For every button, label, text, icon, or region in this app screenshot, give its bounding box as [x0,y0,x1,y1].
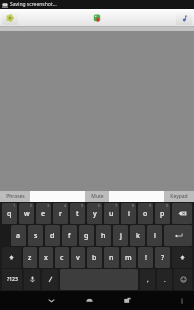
button[interactable]: 6 [87,203,102,224]
button[interactable]: Sticker [2,11,18,25]
button[interactable]: Shift [172,247,192,268]
button[interactable]: Voice input [24,269,40,290]
button[interactable]: App [90,11,104,25]
staticText: , [147,276,149,284]
staticText: 1 [13,203,16,208]
button[interactable]: More options [174,291,190,310]
staticText: 9 [149,203,152,208]
button[interactable]: 2 [19,203,34,224]
button[interactable]: Mute [85,191,109,202]
button[interactable]: Phrases [0,191,30,202]
button[interactable]: Music [176,11,192,25]
button[interactable]: k [130,225,145,246]
staticText: 5 [81,203,84,208]
button[interactable]: Enter [164,225,192,246]
staticText: w [24,209,30,219]
button[interactable]: v [71,247,85,268]
staticText: g [84,231,89,241]
button[interactable]: 1 [2,203,17,224]
button[interactable]: h [96,225,111,246]
button[interactable]: Recent apps [114,291,140,310]
button[interactable]: ?123 [2,269,22,290]
button[interactable]: 9 [138,203,153,224]
button[interactable]: j [113,225,128,246]
staticText: b [92,253,97,263]
staticText: q [7,209,12,219]
button[interactable]: d [45,225,60,246]
staticText: 2 [30,203,33,208]
button[interactable]: s [28,225,43,246]
staticText: h [101,231,106,241]
staticText: v [76,253,80,263]
staticText: d [50,231,55,241]
staticText: x [44,253,48,263]
button[interactable]: Emoji [174,269,192,290]
staticText: Saving screenshot… [10,1,57,8]
button[interactable]: a [11,225,26,246]
button[interactable]: . [157,269,172,290]
staticText: ?123 [7,276,18,283]
staticText: 3 [47,203,50,208]
staticText: Keypad [170,193,188,200]
staticText: y [93,209,97,219]
button[interactable]: ! [138,247,153,268]
staticText: r [59,209,62,219]
button[interactable]: m [121,247,136,268]
staticText: ! [145,253,147,263]
button[interactable]: Shift [2,247,21,268]
staticText: k [136,231,140,241]
button[interactable]: 4 [53,203,68,224]
button[interactable]: 0 [155,203,170,224]
staticText: 7 [115,203,118,208]
staticText: z [28,253,32,263]
button[interactable]: f [62,225,77,246]
button[interactable]: Delete [172,203,192,224]
staticText: c [60,253,64,263]
button[interactable]: Hide keyboard [38,291,64,310]
staticText: a [16,231,21,241]
staticText: . [164,276,166,284]
staticText: 6 [98,203,101,208]
staticText: 8 [132,203,135,208]
staticText: j [120,231,122,241]
staticText: f [68,231,71,241]
button[interactable]: ? [155,247,170,268]
staticText: Mute [91,193,104,200]
staticText: t [76,209,79,219]
button[interactable]: Keypad [164,191,194,202]
staticText: ? [161,253,165,263]
button[interactable]: b [87,247,102,268]
staticText: Phrases [6,193,25,200]
staticText: m [125,253,132,263]
button[interactable]: , [140,269,155,290]
staticText: n [109,253,114,263]
staticText: 0 [166,203,169,208]
button[interactable]: l [147,225,162,246]
button[interactable]: 5 [70,203,85,224]
button[interactable]: Home [76,291,102,310]
button[interactable]: g [79,225,94,246]
button[interactable]: z [23,247,37,268]
button[interactable]: x [39,247,53,268]
button[interactable]: 3 [36,203,51,224]
staticText: o [143,209,148,219]
button[interactable]: 8 [121,203,136,224]
button[interactable]: 7 [104,203,119,224]
staticText: l [154,231,156,241]
staticText: e [41,209,46,219]
staticText: s [34,231,38,241]
staticText: p [160,209,165,219]
staticText: 4 [64,203,67,208]
button[interactable]: n [104,247,119,268]
staticText: u [109,209,114,219]
staticText: i [128,209,130,219]
button[interactable]: Handwriting [42,269,58,290]
button[interactable]: c [55,247,69,268]
